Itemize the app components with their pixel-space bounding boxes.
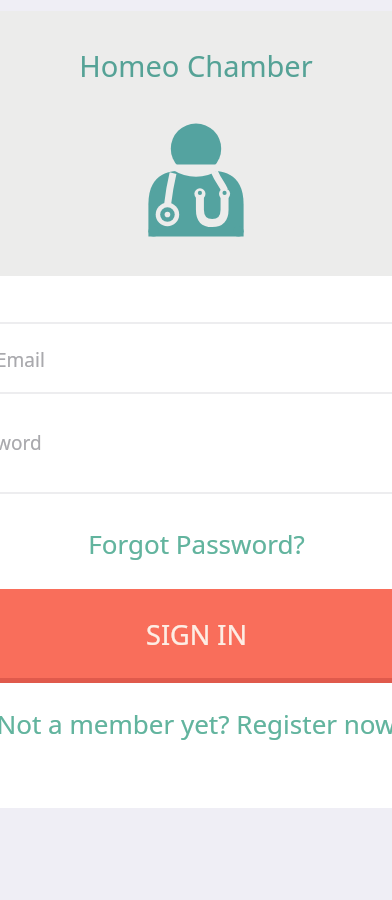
staticText: word bbox=[0, 430, 42, 456]
staticText: Forgot Password? bbox=[88, 526, 305, 561]
other: Doctor bbox=[140, 120, 252, 242]
staticText: SIGN IN bbox=[146, 616, 247, 653]
staticText: Email bbox=[0, 347, 45, 373]
button[interactable]: word bbox=[0, 393, 392, 493]
staticText: Homeo Chamber bbox=[0, 46, 392, 85]
button[interactable]: SIGN IN bbox=[0, 589, 392, 683]
button[interactable]: Email bbox=[0, 323, 392, 392]
button[interactable]: Not a member yet? Register now bbox=[0, 683, 392, 763]
staticText: Not a member yet? Register now bbox=[0, 706, 392, 741]
button[interactable]: Forgot Password? bbox=[0, 506, 392, 581]
